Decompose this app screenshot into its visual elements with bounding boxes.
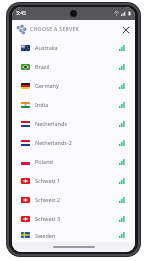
staticText: CHOOSE A SERVER: [30, 26, 80, 33]
staticText: 3:45: [16, 10, 26, 17]
staticText: Sweden: [35, 232, 56, 239]
staticText: Poland: [35, 158, 53, 165]
button[interactable]: Brazil: [12, 57, 135, 76]
staticText: Netherlands: [35, 120, 67, 127]
button[interactable]: Schweiz 1: [12, 171, 135, 190]
button[interactable]: Australia: [12, 38, 135, 57]
button[interactable]: Germany: [12, 76, 135, 95]
button[interactable]: India: [12, 95, 135, 114]
staticText: Germany: [35, 82, 59, 89]
staticText: Schweiz 1: [35, 177, 61, 184]
button[interactable]: Schweiz 2: [12, 190, 135, 209]
button[interactable]: Close: [119, 23, 132, 36]
staticText: Schweiz 3: [35, 215, 61, 222]
staticText: Schweiz 2: [35, 196, 61, 203]
staticText: India: [35, 101, 49, 108]
staticText: Netherlands-2: [35, 139, 72, 146]
staticText: Brazil: [35, 63, 50, 70]
button[interactable]: Netherlands-2: [12, 133, 135, 152]
button[interactable]: Schweiz 3: [12, 209, 135, 228]
button[interactable]: Poland: [12, 152, 135, 171]
button[interactable]: Sweden: [12, 228, 135, 242]
button[interactable]: Netherlands: [12, 114, 135, 133]
staticText: Australia: [35, 44, 58, 51]
